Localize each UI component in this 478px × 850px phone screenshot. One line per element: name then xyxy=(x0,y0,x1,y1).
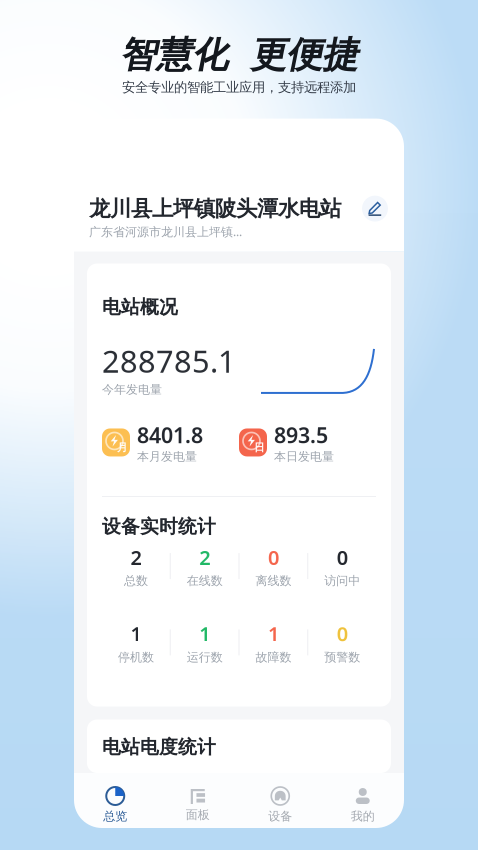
staticText: 我的 xyxy=(351,809,375,824)
staticText: 1 xyxy=(268,620,279,647)
staticText: 访问中 xyxy=(324,573,360,588)
button[interactable]: 我的 xyxy=(321,781,404,829)
staticText: 8401.8 xyxy=(137,421,203,449)
staticText: 今年发电量 xyxy=(102,382,162,397)
staticText: 本月发电量 xyxy=(137,449,197,464)
button[interactable]: 面板 xyxy=(156,782,239,827)
staticText: 设备 xyxy=(268,809,292,824)
staticText: 本日发电量 xyxy=(274,449,334,464)
staticText: 面板 xyxy=(186,807,210,822)
staticText: 月 xyxy=(117,441,128,454)
button[interactable]: 总览 xyxy=(74,781,156,829)
staticText: 0 xyxy=(268,544,279,570)
button[interactable]: 编辑电站 xyxy=(361,195,389,223)
staticText: 运行数 xyxy=(187,650,223,664)
staticText: 1 xyxy=(199,620,210,647)
staticText: 电站概况 xyxy=(102,295,178,318)
staticText: 893.5 xyxy=(274,421,328,449)
staticText: 安全专业的智能工业应用，支持远程添加 xyxy=(122,79,356,96)
staticText: 1 xyxy=(130,620,141,647)
staticText: 总数 xyxy=(124,573,148,588)
staticText: 广东省河源市龙川县上坪镇... xyxy=(89,224,242,239)
staticText: 电站电度统计 xyxy=(102,735,216,758)
staticText: 智慧化 更便捷 xyxy=(120,33,358,77)
staticText: 设备实时统计 xyxy=(102,515,216,538)
staticText: 日 xyxy=(254,441,265,454)
staticText: 0 xyxy=(337,544,348,570)
staticText: 总览 xyxy=(103,809,127,824)
staticText: 2 xyxy=(199,544,210,570)
staticText: 故障数 xyxy=(255,650,291,664)
button[interactable]: 设备 xyxy=(239,781,321,829)
staticText: 0 xyxy=(337,620,348,647)
staticText: 预警数 xyxy=(324,650,360,664)
staticText: 288785.1 xyxy=(102,340,236,381)
staticText: 停机数 xyxy=(118,650,154,664)
staticText: 龙川县上坪镇陂头潭水电站 xyxy=(89,195,341,222)
staticText: 在线数 xyxy=(187,573,223,588)
staticText: 离线数 xyxy=(255,573,291,588)
staticText: 2 xyxy=(130,544,141,570)
